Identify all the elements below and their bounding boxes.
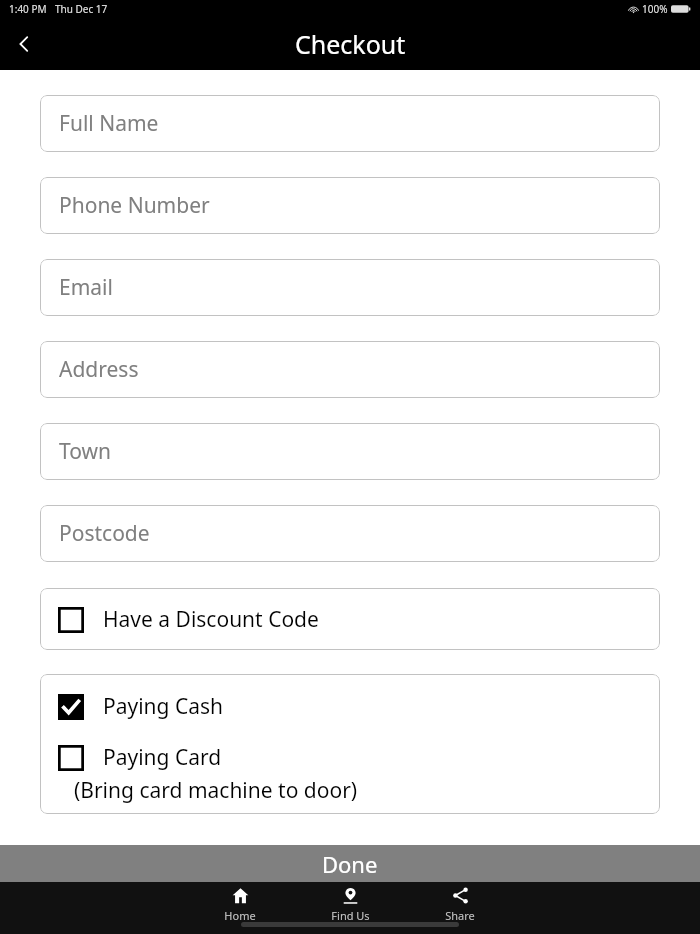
button[interactable]: Paying Card [58, 743, 660, 805]
other: Share [452, 887, 469, 904]
staticText: Address [59, 355, 139, 384]
button[interactable]: Have a Discount Code [40, 588, 660, 650]
button[interactable]: Address [40, 341, 660, 398]
staticText: Find Us [331, 908, 370, 923]
staticText: Checkout [295, 27, 406, 61]
staticText: Phone Number [59, 191, 210, 220]
button[interactable]: Done [0, 845, 700, 882]
button[interactable]: Find Us [295, 887, 405, 923]
staticText: Paying Card [103, 743, 222, 772]
other: Home [232, 887, 249, 904]
staticText: Town [59, 437, 111, 466]
button[interactable]: Email [40, 259, 660, 316]
staticText: Thu Dec 17 [55, 2, 108, 16]
button[interactable]: Back [0, 20, 48, 68]
staticText: Email [59, 273, 113, 302]
staticText: Share [445, 908, 475, 923]
other: Find Us [342, 887, 359, 904]
button[interactable]: Paying Cash [58, 692, 660, 721]
staticText: 100% [642, 2, 668, 16]
staticText: (Bring card machine to door) [74, 776, 358, 805]
button[interactable]: Full Name [40, 95, 660, 152]
staticText: Paying Cash [103, 692, 224, 721]
button[interactable]: Town [40, 423, 660, 480]
staticText: Postcode [59, 519, 150, 548]
button[interactable]: Phone Number [40, 177, 660, 234]
staticText: Full Name [59, 109, 159, 138]
staticText: 1:40 PM [9, 2, 47, 16]
button[interactable]: Postcode [40, 505, 660, 562]
staticText: Done [322, 849, 378, 879]
button[interactable]: Home [185, 887, 295, 923]
staticText: Home [224, 908, 256, 923]
button[interactable]: Share [405, 887, 515, 923]
staticText: Have a Discount Code [103, 605, 319, 634]
